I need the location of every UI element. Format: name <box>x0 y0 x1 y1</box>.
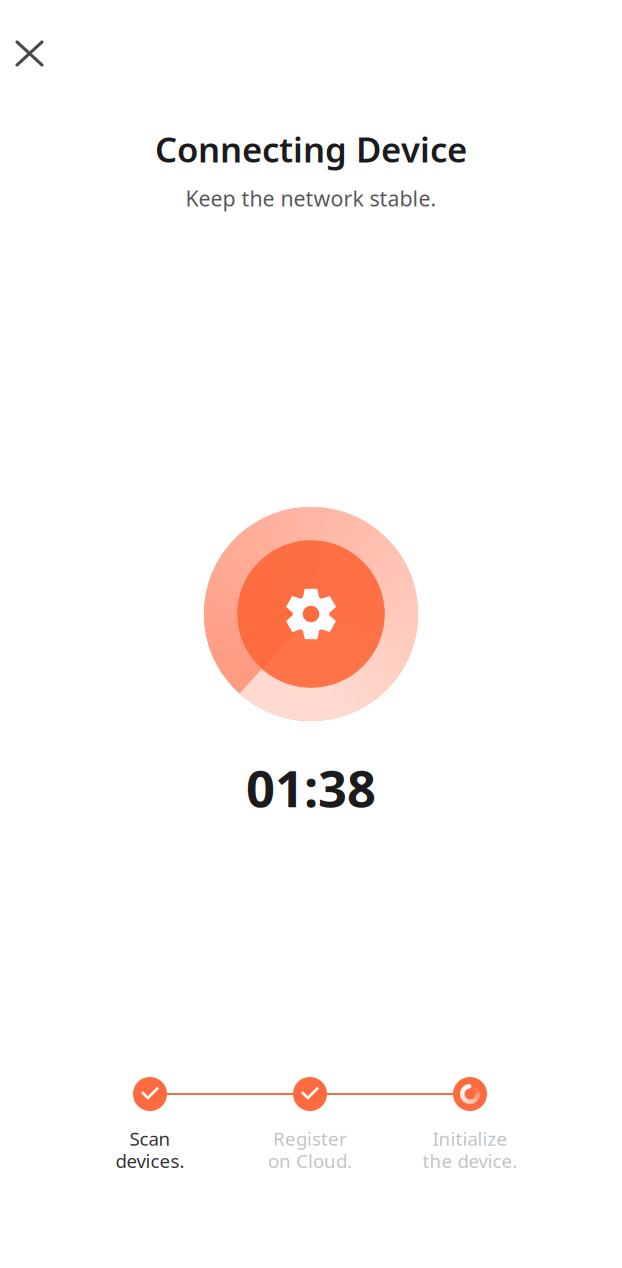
button[interactable]: Close <box>1 26 58 81</box>
staticText: Initialize <box>432 1126 507 1151</box>
staticText: Connecting Device <box>155 126 467 172</box>
staticText: on Cloud. <box>268 1148 352 1173</box>
staticText: 01:38 <box>246 754 376 821</box>
staticText: the device. <box>422 1148 517 1173</box>
staticText: Keep the network stable. <box>185 184 436 212</box>
staticText: Scan <box>129 1126 170 1151</box>
staticText: devices. <box>115 1148 184 1173</box>
staticText: Register <box>273 1126 347 1151</box>
